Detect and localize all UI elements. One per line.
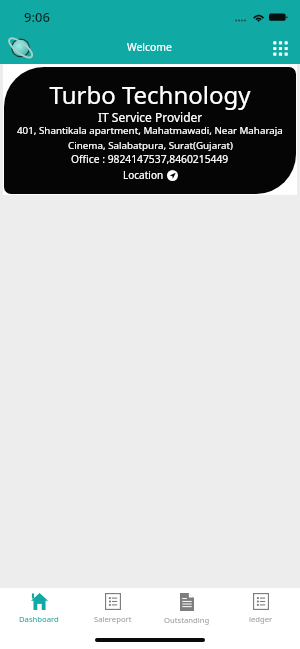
staticText: IT Service Provider	[98, 109, 203, 125]
staticText: Office : 9824147537,8460215449	[71, 152, 229, 166]
button[interactable]: Apps menu	[264, 31, 296, 63]
staticText: Dashboard	[19, 614, 59, 624]
button[interactable]: ledger	[226, 588, 296, 628]
button[interactable]: Salereport	[78, 588, 148, 628]
staticText: 9:06	[24, 8, 50, 26]
staticText: ledger	[249, 614, 273, 624]
staticText: 401, Shantikala apartment, Mahatmawadi, …	[17, 124, 283, 137]
staticText: Turbo Technology	[49, 78, 251, 111]
staticText: Welcome	[127, 40, 172, 54]
button[interactable]: Location	[123, 168, 178, 182]
staticText: Location	[123, 168, 164, 182]
button[interactable]: Outstanding	[152, 588, 222, 628]
button[interactable]: App logo	[4, 31, 36, 63]
button[interactable]: Turbo Technology	[4, 67, 296, 194]
staticText: Outstanding	[164, 615, 210, 625]
staticText: Cinema, Salabatpura, Surat(Gujarat)	[68, 139, 233, 152]
button[interactable]: Dashboard	[4, 588, 74, 628]
staticText: Salereport	[94, 614, 132, 624]
